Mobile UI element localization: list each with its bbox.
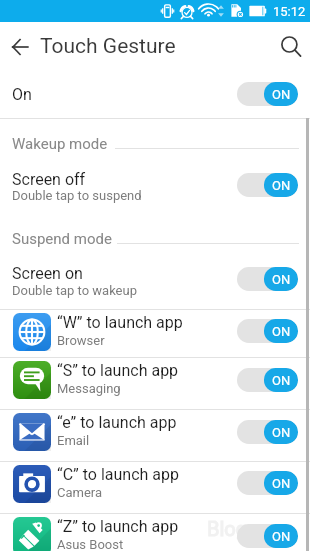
button[interactable]: Screen on [12, 264, 83, 283]
button[interactable]: Screen off [12, 170, 86, 189]
button[interactable]: On [237, 267, 298, 291]
staticText: ON [272, 476, 291, 491]
staticText: ON [272, 324, 291, 339]
staticText: Touch Gesture [40, 34, 176, 59]
staticText: ON [272, 178, 291, 193]
staticText: “e” to launch app [57, 413, 177, 432]
button[interactable]: “S” to launch app [0, 357, 310, 406]
staticText: “Z” to launch app [57, 517, 179, 536]
staticText: Wakeup mode [12, 135, 108, 153]
staticText: Blogm [207, 517, 265, 540]
button[interactable]: Search [275, 31, 307, 63]
staticText: ON [272, 425, 291, 440]
button[interactable]: On [237, 524, 298, 548]
button[interactable]: On [237, 82, 298, 106]
staticText: Camera [57, 485, 103, 500]
button[interactable]: “e” to launch app [0, 409, 310, 458]
staticText: Double tap to suspend [12, 188, 142, 203]
staticText: “S” to launch app [57, 361, 179, 380]
button[interactable]: On [237, 368, 298, 392]
button[interactable]: On [237, 173, 298, 197]
button[interactable]: On [237, 319, 298, 343]
button[interactable]: “W” to launch app [0, 309, 310, 358]
button[interactable]: “Z” to launch app [0, 513, 310, 551]
staticText: ON [272, 272, 291, 287]
staticText: Asus Boost [57, 537, 124, 551]
staticText: “W” to launch app [57, 313, 183, 332]
staticText: Browser [57, 333, 105, 348]
staticText: 15:12 [273, 4, 306, 19]
staticText: Double tap to wakeup [12, 283, 137, 298]
button[interactable]: “C” to launch app [0, 461, 310, 510]
staticText: “C” to launch app [57, 465, 180, 484]
button[interactable]: On [237, 471, 298, 495]
staticText: Email [57, 433, 90, 448]
button[interactable]: On [237, 420, 298, 444]
staticText: ON [272, 529, 291, 544]
button[interactable]: Back [4, 31, 36, 63]
button[interactable]: On [12, 85, 32, 104]
staticText: Messaging [57, 381, 121, 396]
staticText: Suspend mode [12, 230, 112, 248]
staticText: ON [272, 87, 291, 102]
staticText: ON [272, 373, 291, 388]
